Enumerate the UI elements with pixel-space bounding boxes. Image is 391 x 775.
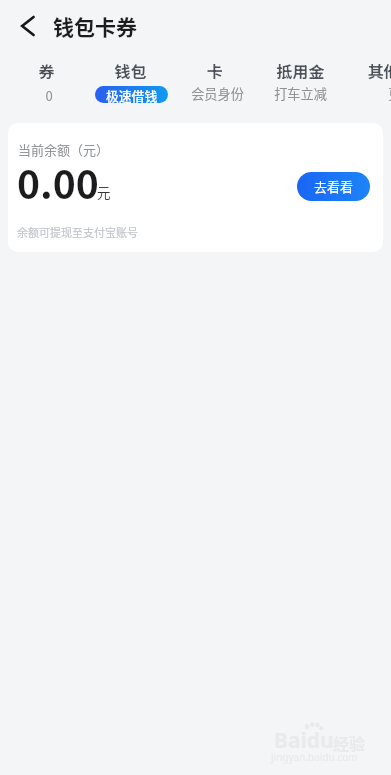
button[interactable]: 当前余额（元） <box>8 123 383 252</box>
button[interactable]: 去看看 <box>297 172 370 201</box>
staticText: 其他 <box>367 59 391 82</box>
staticText: 元 <box>97 182 111 202</box>
button[interactable] <box>184 58 246 104</box>
button[interactable] <box>360 58 391 104</box>
staticText: jingyan.baidu.com <box>271 750 358 764</box>
staticText: 打车立减 <box>274 84 327 102</box>
staticText: 钱包卡券 <box>53 11 137 41</box>
staticText: Baidu <box>274 726 334 755</box>
button[interactable]: Back <box>7 6 47 46</box>
staticText: 极速借钱 <box>106 86 158 103</box>
staticText: 去看看 <box>314 177 354 196</box>
button[interactable] <box>266 58 334 104</box>
staticText: 卡 <box>206 59 223 82</box>
button[interactable]: 极速借钱 <box>95 86 168 103</box>
button[interactable] <box>93 58 167 104</box>
staticText: 0 <box>45 86 53 104</box>
staticText: 余额可提现至支付宝账号 <box>17 224 138 240</box>
button[interactable] <box>16 58 76 104</box>
staticText: 钱包 <box>114 59 147 82</box>
staticText: 当前余额（元） <box>18 140 110 159</box>
staticText: 0.00 <box>17 154 99 210</box>
staticText: 抵用金 <box>276 59 325 82</box>
staticText: 更多权益 <box>388 84 391 102</box>
staticText: 会员身份 <box>191 84 244 102</box>
staticText: 券 <box>38 59 55 82</box>
staticText: 经验 <box>333 731 366 754</box>
